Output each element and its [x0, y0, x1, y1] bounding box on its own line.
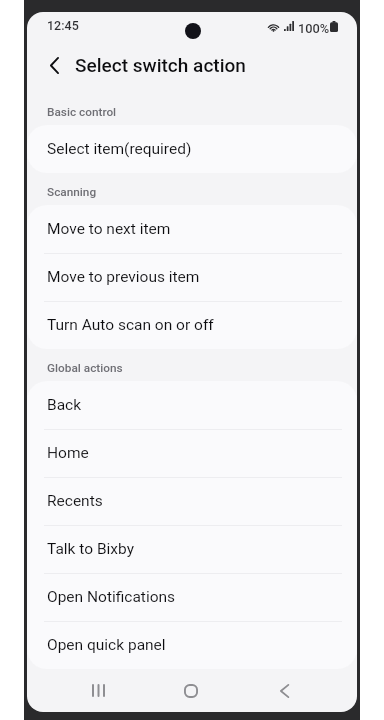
button[interactable]: Turn Auto scan on or off: [27, 301, 357, 349]
staticText: Scanning: [47, 185, 97, 199]
staticText: Open quick panel: [47, 636, 166, 654]
button[interactable]: Open quick panel: [27, 621, 357, 669]
staticText: Back: [47, 396, 82, 414]
button[interactable]: Navigate up: [29, 46, 73, 86]
button[interactable]: Home: [27, 429, 357, 477]
staticText: 12:45: [47, 18, 79, 33]
staticText: Select switch action: [75, 54, 246, 76]
staticText: Home: [47, 444, 89, 462]
button[interactable]: Move to next item: [27, 205, 357, 253]
button[interactable]: Back: [262, 670, 306, 711]
staticText: Turn Auto scan on or off: [47, 316, 214, 334]
button[interactable]: Talk to Bixby: [27, 525, 357, 573]
button[interactable]: Recent apps: [76, 670, 120, 711]
staticText: Open Notifications: [47, 588, 176, 606]
staticText: Select item(required): [47, 140, 192, 158]
staticText: Recents: [47, 492, 103, 510]
staticText: Basic control: [47, 105, 117, 119]
button[interactable]: Open Notifications: [27, 573, 357, 621]
button[interactable]: Recents: [27, 477, 357, 525]
button[interactable]: Back: [27, 381, 357, 429]
staticText: Global actions: [47, 361, 123, 375]
staticText: Talk to Bixby: [47, 540, 134, 558]
button[interactable]: Move to previous item: [27, 253, 357, 301]
staticText: 100%: [298, 21, 330, 36]
staticText: Move to previous item: [47, 268, 200, 286]
staticText: Move to next item: [47, 220, 171, 238]
button[interactable]: Select item(required): [27, 125, 357, 173]
button[interactable]: Home: [169, 670, 213, 711]
